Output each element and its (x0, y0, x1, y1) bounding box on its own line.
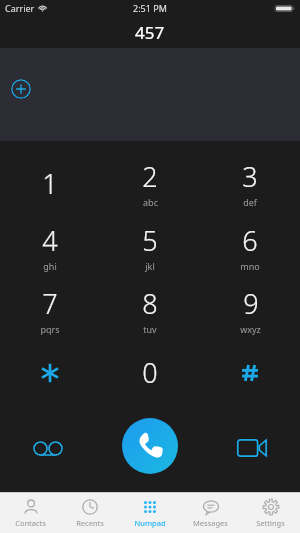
button[interactable]: Video call (230, 426, 274, 470)
button[interactable]: 9 (200, 278, 300, 341)
staticText: tuv (143, 323, 157, 335)
staticText: 2 (142, 158, 158, 195)
button[interactable]: Messages (180, 493, 240, 533)
staticText: Recents (76, 518, 104, 528)
staticText: 457 (135, 21, 165, 44)
staticText: 1 (42, 165, 58, 202)
button[interactable]: Voicemail (26, 426, 70, 470)
staticText: 2:51 PM (133, 2, 167, 14)
button[interactable]: Numpad (120, 493, 180, 533)
staticText: abc (143, 196, 158, 208)
button[interactable]: 1 (0, 151, 100, 215)
staticText: pqrs (40, 323, 60, 335)
staticText: wxyz (240, 323, 261, 335)
button[interactable]: 8 (100, 278, 200, 341)
button[interactable]: Contacts (0, 493, 60, 533)
staticText: 3 (242, 158, 258, 195)
staticText: 6 (242, 222, 258, 259)
button[interactable]: 7 (0, 278, 100, 341)
staticText: Contacts (15, 518, 46, 528)
staticText: Carrier (5, 2, 35, 14)
button[interactable] (200, 341, 300, 404)
staticText: Messages (193, 518, 228, 528)
staticText: 8 (142, 285, 158, 322)
button[interactable]: Add contact (11, 79, 31, 99)
button[interactable]: 0 (100, 341, 200, 404)
button[interactable]: Recents (60, 493, 120, 533)
button[interactable]: 4 (0, 215, 100, 278)
staticText: 9 (243, 285, 259, 322)
button[interactable]: 6 (200, 215, 300, 278)
button[interactable]: Call (122, 418, 178, 474)
button[interactable]: 3 (200, 151, 300, 215)
staticText: ghi (43, 260, 57, 272)
button[interactable] (0, 341, 100, 404)
button[interactable]: 5 (100, 215, 200, 278)
staticText: Settings (256, 518, 285, 528)
staticText: def (243, 196, 257, 208)
button[interactable]: Settings (240, 493, 300, 533)
staticText: 5 (142, 222, 158, 259)
staticText: Numpad (134, 518, 166, 528)
staticText: jkl (145, 260, 155, 272)
staticText: mno (240, 260, 260, 272)
staticText: 7 (42, 285, 58, 322)
button[interactable]: 2 (100, 151, 200, 215)
staticText: 0 (142, 354, 158, 391)
staticText: 4 (42, 222, 58, 259)
